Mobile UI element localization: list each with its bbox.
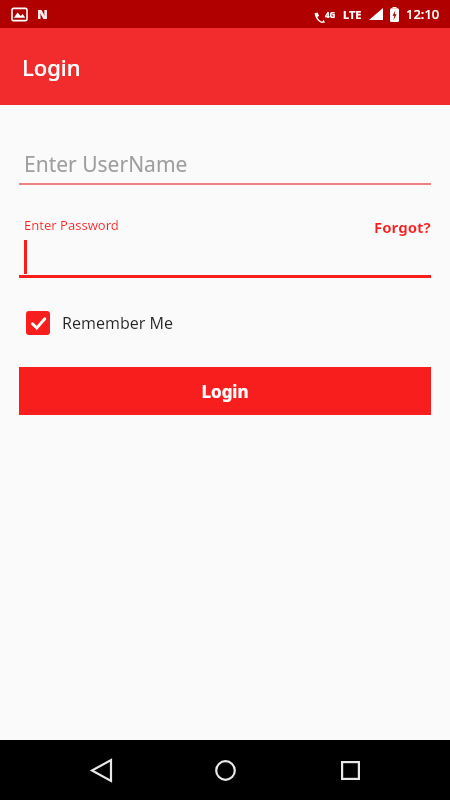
- staticText: 4G: [325, 9, 336, 20]
- staticText: Login: [22, 52, 81, 82]
- staticText: Enter Password: [24, 216, 119, 234]
- staticText: N: [37, 5, 48, 23]
- button[interactable]: Remember Me: [19, 307, 186, 339]
- staticText: Forgot?: [374, 217, 431, 237]
- staticText: 12:10: [406, 5, 440, 23]
- button[interactable]: Recent apps: [326, 746, 374, 794]
- button[interactable]: Home: [201, 746, 249, 794]
- button[interactable]: Forgot?: [366, 211, 431, 239]
- staticText: Enter UserName: [24, 150, 188, 179]
- button[interactable]: Login: [19, 367, 431, 415]
- staticText: Remember Me: [62, 312, 174, 334]
- staticText: LTE: [343, 7, 362, 22]
- button[interactable]: Back: [77, 746, 125, 794]
- button[interactable]: Enter UserName: [19, 145, 431, 185]
- button[interactable]: Enter Password: [19, 211, 431, 278]
- staticText: Login: [201, 380, 249, 403]
